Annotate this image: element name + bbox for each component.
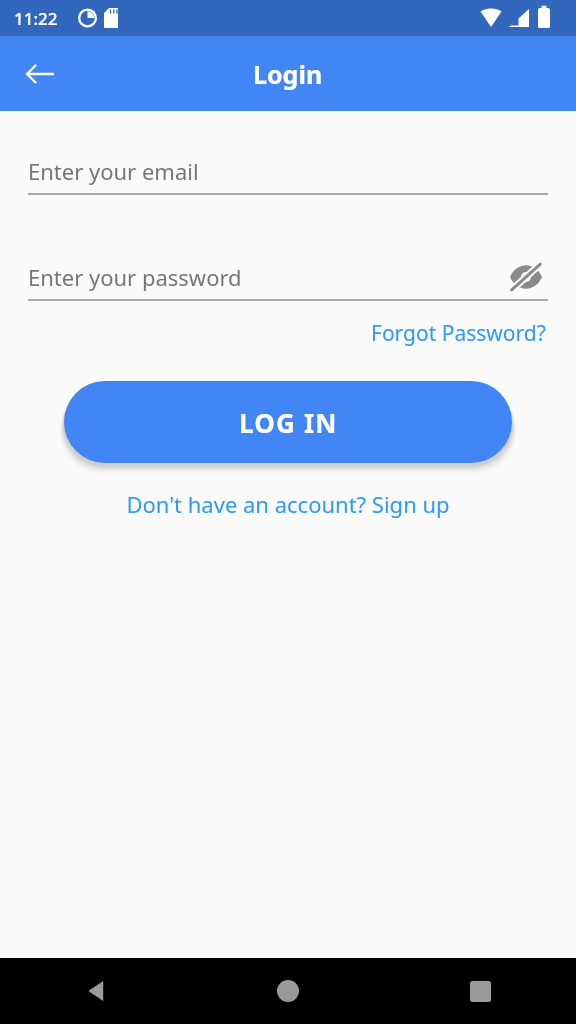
button[interactable]: LOG IN	[64, 381, 512, 463]
button[interactable]: Don't have an account? Sign up	[122, 485, 454, 523]
staticText: Forgot Password?	[371, 319, 546, 348]
staticText: Enter your email	[28, 156, 199, 186]
staticText: 11:22	[14, 7, 58, 30]
button[interactable]: Back	[0, 958, 192, 1024]
button[interactable]: Show password	[504, 255, 548, 299]
button[interactable]: Recent apps	[384, 958, 576, 1024]
button[interactable]: Enter your email	[28, 149, 548, 193]
button[interactable]: Enter your password	[28, 255, 548, 299]
staticText: Login	[253, 57, 323, 91]
staticText: LOG IN	[239, 405, 338, 440]
button[interactable]: Home	[192, 958, 384, 1024]
staticText: Enter your password	[28, 262, 242, 292]
button[interactable]: Back	[10, 44, 70, 104]
staticText: Don't have an account? Sign up	[126, 489, 450, 519]
button[interactable]: Forgot Password?	[369, 315, 548, 352]
